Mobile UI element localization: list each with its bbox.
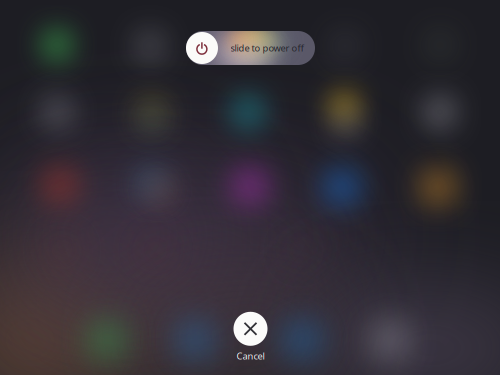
button[interactable]: slide to power off: [186, 31, 315, 65]
button[interactable]: Cancel: [233, 312, 267, 362]
staticText: Cancel: [236, 350, 264, 362]
staticText: slide to power off: [230, 42, 303, 54]
